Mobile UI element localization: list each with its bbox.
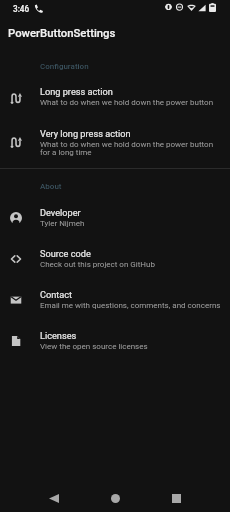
button[interactable]: Recent apps [166, 488, 186, 508]
staticText: 3:46 [13, 4, 30, 14]
staticText: Email me with questions, comments, and c… [40, 301, 221, 310]
staticText: PowerButtonSettings [8, 27, 116, 40]
staticText: View the open source licenses [40, 342, 148, 351]
staticText: Developer [40, 207, 81, 218]
button[interactable]: Contact [0, 284, 230, 325]
button[interactable]: Home [105, 488, 125, 508]
button[interactable]: Source code [0, 243, 230, 284]
staticText: Source code [40, 248, 91, 259]
button[interactable]: Very long press action [0, 123, 230, 171]
staticText: Check out this project on GitHub [40, 260, 155, 269]
staticText: Licenses [40, 330, 77, 341]
staticText: Tyler Nijmeh [40, 219, 85, 228]
button[interactable]: Long press action [0, 81, 230, 123]
staticText: Long press action [40, 86, 113, 97]
staticText: Very long press action [40, 128, 131, 139]
staticText: Configuration [40, 62, 89, 71]
button[interactable]: Licenses [0, 325, 230, 366]
staticText: About [40, 182, 62, 191]
button[interactable]: Developer [0, 202, 230, 243]
staticText: What to do when we hold down the power b… [40, 140, 214, 157]
staticText: Contact [40, 289, 73, 300]
staticText: What to do when we hold down the power b… [40, 98, 214, 107]
button[interactable]: Back [44, 488, 64, 508]
